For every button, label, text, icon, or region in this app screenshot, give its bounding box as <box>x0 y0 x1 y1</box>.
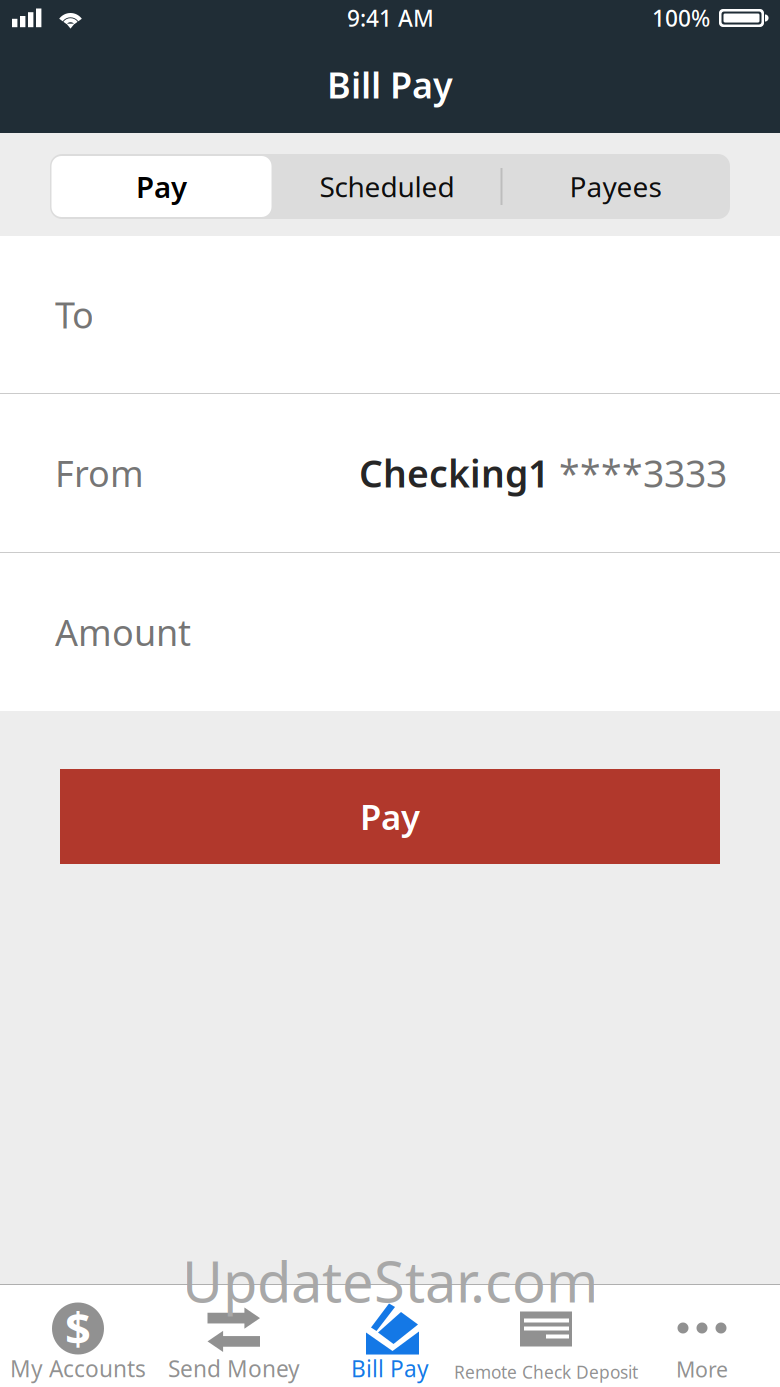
staticText: Amount <box>55 608 191 656</box>
staticText: Scheduled <box>319 168 454 205</box>
staticText: ****3333 <box>549 448 727 498</box>
staticText: To <box>55 291 94 338</box>
staticText: Remote Check Deposit <box>454 1360 638 1383</box>
button[interactable]: Send Money <box>156 1284 312 1387</box>
staticText: Checking1 <box>359 448 549 498</box>
staticText: Pay <box>360 793 420 839</box>
staticText: UpdateStar.com <box>182 1244 598 1318</box>
button[interactable]: Remote Check Deposit <box>468 1284 624 1387</box>
button[interactable]: Payees <box>502 156 728 217</box>
staticText: From <box>55 449 144 497</box>
button[interactable]: More <box>624 1284 780 1387</box>
button[interactable]: Bill Pay <box>312 1284 468 1387</box>
staticText: Bill Pay <box>351 1353 429 1383</box>
staticText: 9:41 AM <box>347 3 434 33</box>
button[interactable]: Scheduled <box>271 156 502 217</box>
staticText: Pay <box>136 167 187 206</box>
staticText: Send Money <box>168 1353 300 1383</box>
button[interactable]: My Accounts <box>0 1284 156 1387</box>
button[interactable]: Pay <box>51 156 271 217</box>
staticText: Bill Pay <box>327 61 453 108</box>
staticText: Payees <box>569 168 661 205</box>
staticText: 100% <box>652 3 710 33</box>
button[interactable]: Pay <box>60 769 720 864</box>
staticText: $ <box>65 1297 91 1358</box>
staticText: More <box>676 1355 728 1383</box>
staticText: My Accounts <box>10 1353 146 1383</box>
